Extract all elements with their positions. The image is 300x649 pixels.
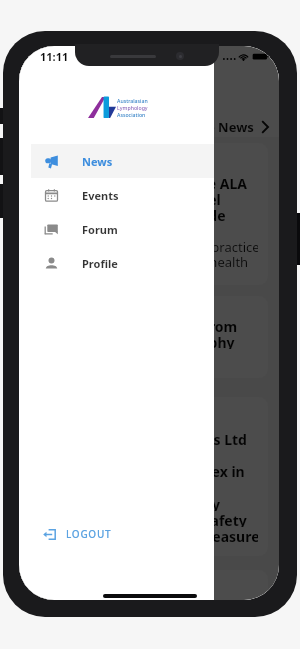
- button[interactable]: 14 AUGUST 23: [30, 570, 268, 600]
- staticText: Announcement from the ALA: [44, 174, 248, 190]
- staticText: Association: [117, 111, 146, 118]
- staticText: 11:11: [40, 49, 69, 64]
- button[interactable]: 23 JUNE 2022: [30, 143, 268, 285]
- staticText: indocyanine lymphography: [44, 333, 235, 349]
- staticText: Position Statement panel: [44, 190, 221, 206]
- staticText: a new clinical trials study: [44, 495, 220, 511]
- staticText: with a new co-primary safety: [44, 511, 247, 527]
- button[interactable]: Forum: [31, 212, 214, 246]
- staticText: and clinical practice guide: [44, 206, 226, 222]
- button[interactable]: Events: [31, 178, 214, 212]
- staticText: Developed with our clinical practice: [44, 238, 258, 253]
- button[interactable]: News: [31, 144, 214, 178]
- button[interactable]: LOGOUT: [19, 515, 214, 553]
- staticText: Forum: [82, 222, 118, 237]
- staticText: Australasian: [117, 97, 148, 104]
- staticText: Ausmed Pharmaceuticals Ltd: [44, 430, 247, 446]
- staticText: More News: [181, 118, 254, 136]
- staticText: Lymphology: [117, 104, 148, 111]
- staticText: Profile: [82, 256, 118, 271]
- staticText: New research findings from: [44, 317, 238, 333]
- staticText: 23 JUNE 2022: [44, 150, 108, 164]
- button[interactable]: More News: [181, 118, 269, 136]
- button[interactable]: New research findings from: [30, 296, 268, 378]
- staticText: announce results of Limex in: [44, 462, 245, 478]
- staticText: LOGOUT: [66, 527, 112, 541]
- button[interactable]: Profile: [31, 246, 214, 280]
- button[interactable]: 7 MARCH 2022: [30, 397, 268, 556]
- staticText: and efficacy endpoint measure: [44, 527, 258, 543]
- staticText: Events: [82, 188, 119, 203]
- staticText: News: [82, 154, 113, 169]
- staticText: partner teams across NSW health: [44, 253, 249, 268]
